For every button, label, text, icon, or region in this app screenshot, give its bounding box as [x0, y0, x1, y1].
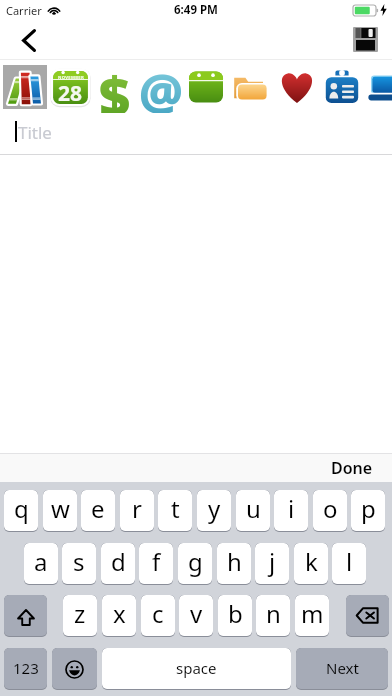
- button[interactable]: l: [332, 543, 366, 585]
- button[interactable]: Shift: [4, 595, 47, 637]
- staticText: t: [171, 492, 180, 525]
- staticText: 28: [58, 79, 83, 108]
- button[interactable]: s: [62, 543, 96, 585]
- staticText: q: [14, 492, 29, 525]
- staticText: w: [51, 492, 70, 525]
- button[interactable]: j: [255, 543, 289, 585]
- button[interactable]: g: [178, 543, 212, 585]
- button[interactable]: h: [217, 543, 251, 585]
- staticText: a: [34, 545, 48, 578]
- staticText: c: [152, 597, 164, 630]
- button[interactable]: v: [179, 595, 213, 637]
- staticText: Carrier: [6, 3, 42, 18]
- button[interactable]: a: [24, 543, 58, 585]
- button[interactable]: n: [256, 595, 290, 637]
- staticText: f: [152, 545, 161, 578]
- staticText: z: [74, 597, 86, 630]
- staticText: y: [208, 492, 221, 525]
- staticText: n: [266, 597, 281, 630]
- button[interactable]: space: [102, 648, 291, 690]
- staticText: x: [113, 597, 126, 630]
- button[interactable]: $: [89, 60, 141, 114]
- staticText: 123: [13, 658, 39, 678]
- button[interactable]: Next: [296, 648, 388, 690]
- button[interactable]: w: [43, 490, 77, 532]
- staticText: @: [139, 59, 183, 113]
- button[interactable]: t: [158, 490, 192, 532]
- button[interactable]: m: [295, 595, 329, 637]
- staticText: u: [246, 492, 261, 525]
- button[interactable]: Back: [0, 20, 58, 60]
- button[interactable]: b: [218, 595, 252, 637]
- button[interactable]: Emoji: [52, 648, 97, 690]
- button[interactable]: o: [313, 490, 347, 532]
- staticText: b: [228, 597, 243, 630]
- staticText: h: [227, 545, 242, 578]
- button[interactable]: d: [101, 543, 135, 585]
- staticText: p: [361, 492, 376, 525]
- staticText: o: [323, 492, 338, 525]
- button[interactable]: k: [294, 543, 328, 585]
- button[interactable]: i: [274, 490, 308, 532]
- button[interactable]: @: [135, 60, 187, 114]
- staticText: l: [346, 545, 353, 578]
- staticText: m: [301, 597, 324, 630]
- button[interactable]: f: [139, 543, 173, 585]
- button[interactable]: 123: [4, 648, 47, 690]
- button[interactable]: [271, 60, 323, 114]
- staticText: g: [188, 545, 203, 578]
- button[interactable]: NOVEMBER: [44, 60, 96, 114]
- button[interactable]: [361, 60, 392, 114]
- staticText: Next: [326, 658, 359, 678]
- button[interactable]: e: [81, 490, 115, 532]
- staticText: NOVEMBER: [58, 75, 84, 81]
- staticText: s: [73, 545, 85, 578]
- staticText: @: [139, 59, 183, 113]
- staticText: 6:49 PM: [174, 2, 218, 18]
- staticText: e: [91, 492, 105, 525]
- staticText: j: [269, 545, 276, 578]
- button[interactable]: [225, 60, 277, 114]
- button[interactable]: u: [236, 490, 270, 532]
- staticText: space: [176, 658, 217, 678]
- button[interactable]: Save: [339, 20, 392, 60]
- button[interactable]: [180, 60, 232, 114]
- staticText: Done: [331, 457, 373, 479]
- button[interactable]: q: [4, 490, 38, 532]
- staticText: d: [111, 545, 126, 578]
- staticText: $: [99, 59, 131, 113]
- button[interactable]: c: [141, 595, 175, 637]
- staticText: i: [288, 492, 295, 525]
- staticText: k: [305, 545, 318, 578]
- button[interactable]: r: [120, 490, 154, 532]
- staticText: Title: [18, 121, 52, 144]
- button[interactable]: x: [102, 595, 136, 637]
- button[interactable]: Backspace: [346, 595, 389, 637]
- button[interactable]: p: [351, 490, 385, 532]
- staticText: v: [190, 597, 203, 630]
- button[interactable]: Title: [0, 114, 392, 155]
- button[interactable]: Done: [323, 454, 381, 482]
- button[interactable]: [0, 60, 51, 114]
- button[interactable]: z: [63, 595, 97, 637]
- button[interactable]: [316, 60, 368, 114]
- staticText: r: [132, 492, 142, 525]
- button[interactable]: y: [197, 490, 231, 532]
- staticText: $: [99, 59, 131, 113]
